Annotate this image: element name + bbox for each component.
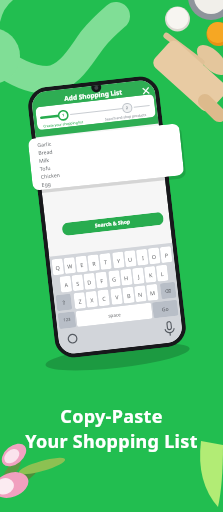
button[interactable]: L — [156, 264, 168, 282]
button[interactable]: R — [87, 254, 100, 271]
staticText: 1 — [62, 112, 65, 117]
staticText: K — [148, 271, 153, 279]
button[interactable]: 123 — [58, 311, 76, 329]
button[interactable]: Z — [73, 292, 86, 309]
button[interactable]: Q — [51, 258, 64, 275]
staticText: Q — [55, 264, 61, 271]
button[interactable]: G — [108, 270, 121, 287]
staticText: P — [164, 251, 169, 259]
button[interactable]: Y — [112, 251, 125, 268]
button[interactable]: A — [59, 275, 72, 293]
button[interactable]: B — [122, 286, 135, 304]
button[interactable]: Go — [152, 300, 179, 318]
staticText: ⇧ — [61, 299, 67, 306]
staticText: 123 — [63, 317, 72, 324]
staticText: Copy-Paste — [60, 404, 163, 429]
button[interactable]: K — [144, 266, 157, 283]
button[interactable]: Search & Shop — [61, 212, 164, 236]
staticText: V — [115, 293, 119, 301]
button[interactable]: P — [160, 246, 172, 263]
button[interactable]: J — [132, 267, 145, 284]
staticText: Create your shopping list — [43, 119, 83, 129]
staticText: Y — [117, 257, 121, 264]
staticText: M — [149, 289, 155, 297]
button[interactable]: U — [124, 250, 137, 267]
button[interactable]: W — [63, 257, 76, 274]
staticText: N — [138, 290, 143, 298]
button[interactable]: Garlic — [28, 123, 184, 191]
button[interactable]: S — [71, 274, 84, 291]
button[interactable]: M — [146, 284, 159, 301]
staticText: E — [80, 261, 85, 268]
staticText: U — [127, 255, 133, 263]
staticText: G — [112, 275, 117, 283]
staticText: Search and shop products — [105, 112, 147, 122]
staticText: Milk — [39, 156, 50, 165]
staticText: Garlic — [37, 140, 52, 149]
button[interactable]: T — [99, 253, 112, 270]
staticText: Chicken — [40, 171, 61, 181]
staticText: Bread — [38, 147, 54, 157]
staticText: T — [104, 258, 108, 266]
staticText: Your Shopping List — [25, 429, 198, 454]
button[interactable]: E — [75, 256, 88, 273]
staticText: Go — [161, 306, 169, 313]
staticText: Add Shopping List — [64, 87, 123, 103]
staticText: 2 — [125, 105, 129, 110]
staticText: Egg — [41, 180, 52, 189]
button[interactable]: C — [97, 289, 110, 306]
button[interactable]: H — [120, 269, 133, 286]
staticText: Search & Shop — [94, 218, 131, 229]
button[interactable]: V — [110, 288, 123, 305]
staticText: L — [160, 270, 164, 277]
staticText: D — [87, 278, 93, 286]
button[interactable]: space — [75, 303, 153, 327]
button[interactable]: I — [136, 249, 149, 266]
button[interactable]: D — [83, 273, 96, 290]
button[interactable]: O — [148, 247, 160, 264]
staticText: B — [127, 292, 131, 299]
staticText: O — [151, 253, 157, 260]
staticText: R — [92, 259, 97, 267]
staticText: H — [124, 274, 129, 281]
button[interactable]: ⇧ — [55, 294, 72, 311]
staticText: space — [108, 311, 121, 318]
staticText: C — [102, 295, 107, 302]
staticText: W — [67, 262, 74, 270]
staticText: F — [100, 277, 104, 284]
button[interactable]: ⌫ — [160, 282, 177, 299]
staticText: Tofu — [39, 164, 51, 173]
staticText: A — [64, 281, 69, 288]
staticText: I — [141, 254, 144, 261]
staticText: S — [76, 279, 81, 287]
button[interactable]: N — [134, 285, 147, 302]
button[interactable]: F — [95, 271, 108, 288]
staticText: J — [137, 273, 140, 280]
staticText: X — [90, 296, 95, 303]
staticText: Z — [78, 297, 83, 305]
staticText: ⌫ — [164, 288, 172, 294]
button[interactable]: X — [85, 291, 98, 308]
